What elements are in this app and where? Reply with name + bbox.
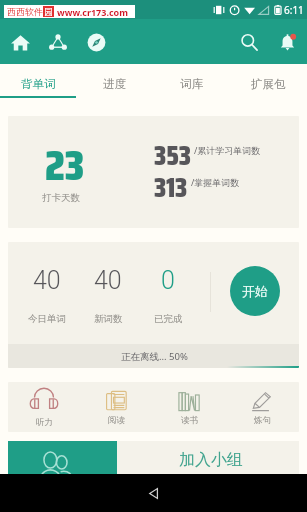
staticText: www.cr173.com	[57, 6, 128, 18]
staticText: 词库	[180, 77, 203, 91]
staticText: /掌握单词数	[191, 176, 240, 188]
button[interactable]: Notifications	[270, 25, 304, 59]
button[interactable]: 阅读	[80, 382, 153, 432]
staticText: 40	[33, 266, 61, 295]
button[interactable]: Back	[146, 486, 161, 501]
staticText: 听力	[36, 417, 53, 428]
staticText: 打卡天数	[42, 192, 80, 204]
staticText: 西西软件	[7, 6, 43, 17]
staticText: 炼句	[254, 415, 271, 426]
button[interactable]: 读书	[153, 382, 226, 432]
staticText: 正在离线... 50%	[121, 350, 188, 363]
staticText: 读书	[181, 415, 198, 426]
staticText: 进度	[103, 77, 126, 91]
staticText: 6:11	[284, 3, 304, 17]
button[interactable]: 进度	[76, 64, 153, 98]
button[interactable]: 开始	[230, 266, 280, 316]
staticText: 新词数	[94, 313, 123, 325]
button[interactable]: 加入小组	[117, 441, 299, 474]
staticText: 今日单词	[28, 313, 66, 325]
staticText: 313	[154, 166, 188, 208]
button[interactable]: Home	[3, 25, 37, 59]
button[interactable]: Search	[232, 25, 266, 59]
button[interactable]: 扩展包	[230, 64, 307, 98]
staticText: 0	[161, 266, 175, 295]
button[interactable]: Group	[8, 441, 117, 474]
button[interactable]: 23	[8, 116, 299, 228]
button[interactable]: Network	[41, 25, 75, 59]
staticText: 加入小组	[179, 450, 243, 470]
staticText: 40	[94, 266, 122, 295]
staticText: 353	[154, 134, 191, 176]
button[interactable]: Explore	[79, 25, 113, 59]
staticText: /累计学习单词数	[194, 144, 261, 156]
staticText: 阅读	[108, 415, 125, 426]
staticText: 开始	[242, 283, 268, 299]
staticText: 扩展包	[251, 77, 286, 91]
staticText: 园	[44, 6, 53, 17]
staticText: 背单词	[21, 77, 56, 91]
staticText: 23	[45, 131, 85, 199]
staticText: 已完成	[154, 313, 183, 325]
button[interactable]: 背单词	[0, 64, 76, 98]
button[interactable]: 词库	[153, 64, 230, 98]
button[interactable]: 听力	[8, 382, 80, 432]
button[interactable]: 炼句	[226, 382, 299, 432]
